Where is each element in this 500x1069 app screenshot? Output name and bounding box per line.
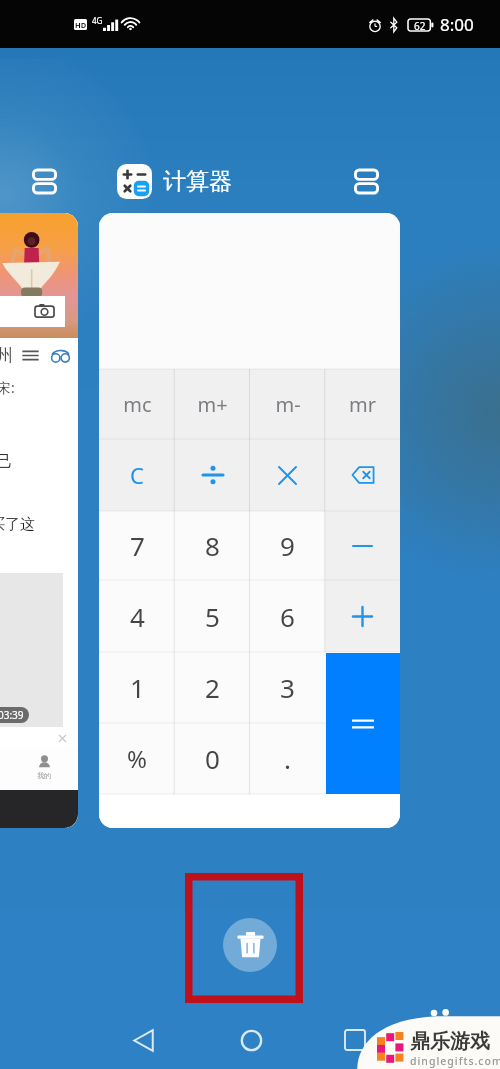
button[interactable]: m+ (175, 369, 250, 439)
staticText: 7 (130, 528, 145, 563)
button[interactable]: 5 (175, 580, 250, 652)
button[interactable]: . (250, 723, 325, 794)
staticText: . (284, 741, 291, 776)
button[interactable]: 2 (175, 652, 250, 723)
staticText: 4G (92, 15, 103, 26)
button[interactable]: Minus (325, 511, 400, 580)
button[interactable]: Split screen right (343, 158, 389, 204)
button[interactable]: Multiply (250, 439, 325, 511)
staticText: 育，买了这 (0, 515, 35, 534)
staticText: 鼎乐游戏 (410, 1029, 490, 1054)
staticText: m- (275, 391, 301, 418)
button[interactable]: Clear all (223, 918, 277, 972)
button[interactable]: 8 (175, 511, 250, 580)
staticText: 5 (205, 599, 220, 634)
button[interactable]: Plus (325, 580, 400, 652)
button[interactable]: 3 (250, 652, 325, 723)
button[interactable]: Split screen left (21, 158, 67, 204)
button[interactable]: 计算器 (117, 164, 232, 199)
button[interactable]: mr (325, 369, 400, 439)
staticText: HD (75, 20, 87, 30)
button[interactable]: 6 (250, 580, 325, 652)
staticText: 4 (130, 599, 145, 634)
staticText: 2 (205, 670, 220, 705)
staticText: % (127, 742, 147, 775)
staticText: mc (123, 391, 152, 418)
staticText: 计算器 (163, 167, 232, 196)
button[interactable]: C (99, 439, 175, 511)
staticText: m+ (197, 391, 228, 418)
staticText: 8:00 (440, 13, 474, 36)
button[interactable]: Divide (175, 439, 250, 511)
button[interactable]: Recent apps (327, 1012, 383, 1068)
button[interactable]: mc (99, 213, 400, 828)
staticText: 自己 (0, 451, 13, 472)
button[interactable]: 0 (175, 723, 250, 794)
staticText: mr (349, 391, 376, 418)
staticText: 0 (205, 741, 220, 776)
staticText: 03:39 (0, 708, 24, 722)
button[interactable]: mc (99, 369, 175, 439)
staticText: 示宋: (0, 378, 15, 397)
button[interactable]: Delete (325, 439, 400, 511)
button[interactable]: Equals (326, 653, 400, 794)
button[interactable]: 州 (0, 213, 78, 828)
button[interactable]: 4 (99, 580, 175, 652)
staticText: 我的 (37, 771, 51, 780)
staticText: 3 (280, 670, 295, 705)
staticText: 62 (414, 19, 426, 31)
staticText: 州 (0, 345, 13, 366)
button[interactable]: 7 (99, 511, 175, 580)
button[interactable]: Back (115, 1012, 171, 1068)
button[interactable]: % (99, 723, 175, 794)
staticText: 8 (205, 528, 220, 563)
staticText: 1 (130, 670, 145, 705)
staticText: 9 (280, 528, 295, 563)
staticText: dinglegifts.com (410, 1054, 500, 1068)
staticText: C (130, 460, 144, 490)
button[interactable]: 9 (250, 511, 325, 580)
button[interactable]: 1 (99, 652, 175, 723)
button[interactable]: Home (223, 1012, 279, 1068)
button[interactable]: m- (250, 369, 325, 439)
staticText: 6 (280, 599, 295, 634)
